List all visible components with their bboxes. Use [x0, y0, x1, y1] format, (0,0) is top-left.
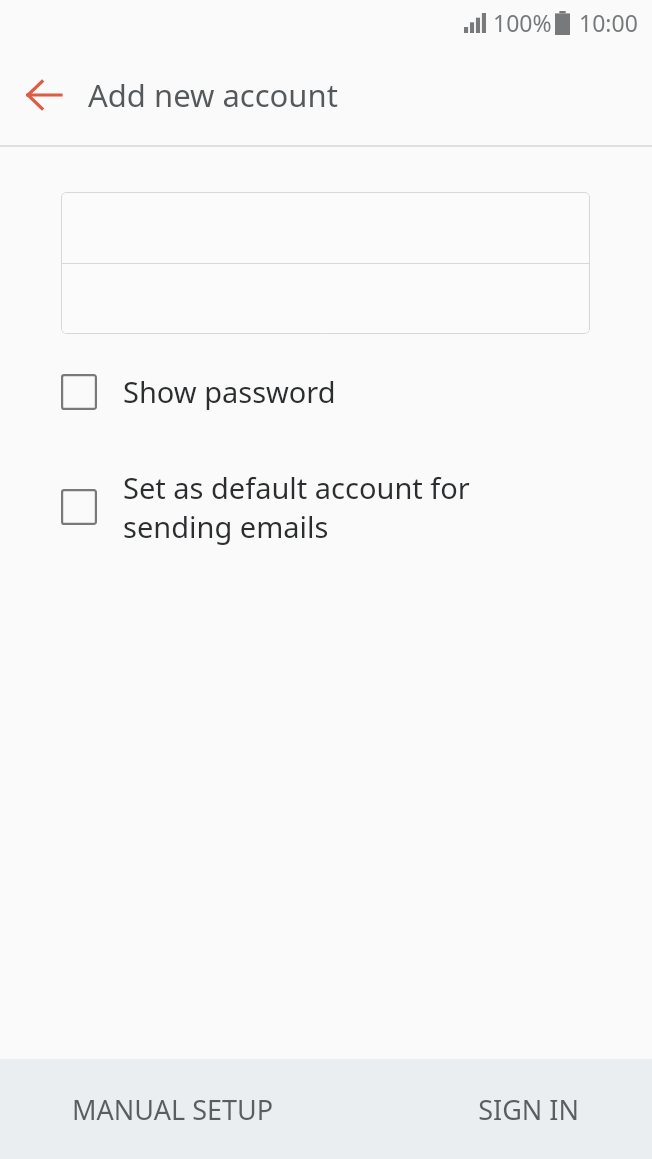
button[interactable]: Password	[61, 264, 590, 334]
staticText: SIGN IN	[478, 1091, 579, 1128]
staticText: sending emails	[123, 507, 329, 546]
button[interactable]: MANUAL SETUP	[0, 1059, 326, 1159]
staticText: 100%	[493, 7, 552, 38]
button[interactable]: Email address	[61, 192, 590, 263]
button[interactable]: Set as default account for	[0, 468, 652, 546]
button[interactable]: SIGN IN	[326, 1059, 652, 1159]
staticText: Add new account	[88, 74, 338, 116]
button[interactable]: Back	[14, 65, 74, 125]
staticText: Show password	[123, 372, 336, 411]
staticText: Set as default account for	[123, 468, 470, 507]
staticText: 10:00	[579, 7, 638, 38]
staticText: MANUAL SETUP	[72, 1091, 274, 1128]
button[interactable]: Show password	[0, 372, 652, 411]
